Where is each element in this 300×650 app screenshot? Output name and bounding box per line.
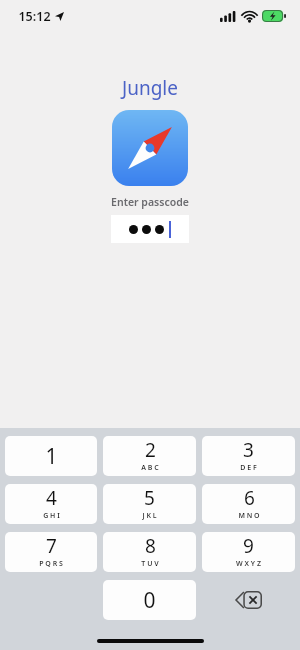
button[interactable]: 9 <box>202 532 295 572</box>
staticText: 0 <box>143 586 156 615</box>
button[interactable]: 5 <box>103 484 196 524</box>
staticText: P Q R S <box>39 559 63 569</box>
staticText: G H I <box>43 511 60 521</box>
staticText: 3 <box>243 437 254 463</box>
staticText: J K L <box>142 511 157 521</box>
button[interactable]: 3 <box>202 436 295 476</box>
button[interactable]: Delete <box>202 580 295 620</box>
staticText: A B C <box>141 463 159 473</box>
button[interactable]: 1 <box>5 436 97 476</box>
staticText: M N O <box>238 511 260 521</box>
staticText: 4 <box>46 485 57 511</box>
button[interactable]: 6 <box>202 484 295 524</box>
button[interactable]: 8 <box>103 532 196 572</box>
staticText: 2 <box>145 437 156 463</box>
staticText: 9 <box>243 533 254 559</box>
button[interactable] <box>111 215 189 243</box>
staticText: 6 <box>244 485 255 511</box>
button[interactable]: 4 <box>5 484 97 524</box>
button[interactable]: 0 <box>103 580 196 620</box>
button[interactable]: 2 <box>103 436 196 476</box>
staticText: 8 <box>145 533 156 559</box>
staticText: T U V <box>141 559 159 569</box>
staticText: Jungle <box>122 75 178 101</box>
staticText: 15:12 <box>18 8 51 25</box>
staticText: 7 <box>46 533 57 559</box>
staticText: D E F <box>240 463 257 473</box>
staticText: 5 <box>144 485 155 511</box>
button[interactable]: 7 <box>5 532 97 572</box>
staticText: 1 <box>45 442 58 471</box>
staticText: W X Y Z <box>236 559 261 569</box>
staticText: Enter passcode <box>111 195 189 209</box>
